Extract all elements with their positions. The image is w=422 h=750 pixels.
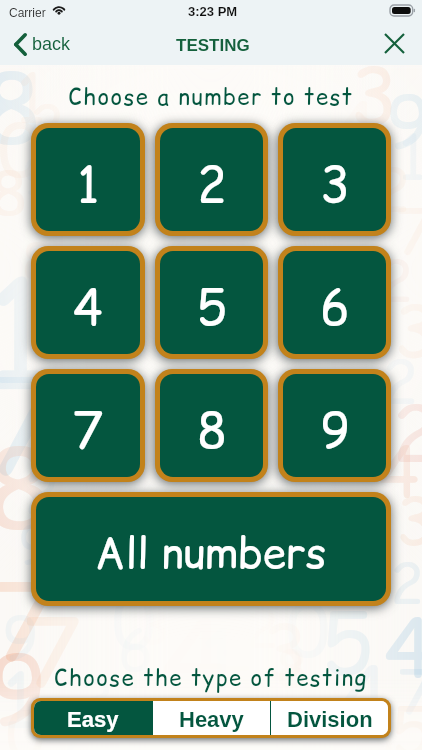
staticText: 0 <box>112 572 156 672</box>
button[interactable]: 8 <box>160 374 263 477</box>
staticText: 2 <box>390 544 422 622</box>
staticText: 8 <box>0 412 54 565</box>
staticText: Heavy <box>179 707 244 732</box>
staticText: Division <box>287 707 373 732</box>
staticText: 7 <box>398 650 422 734</box>
button[interactable]: 5 <box>160 251 263 354</box>
staticText: 9 <box>2 596 39 680</box>
staticText: 8 <box>276 632 308 705</box>
staticText: 7 <box>0 548 56 693</box>
staticText: 1 <box>0 232 50 427</box>
staticText: 9 <box>386 72 422 172</box>
staticText: 7 <box>0 336 61 515</box>
staticText: 8 <box>0 150 28 236</box>
staticText: 3 <box>394 282 422 380</box>
staticText: 2 <box>62 700 95 750</box>
staticText: Easy <box>67 707 119 732</box>
staticText: 5 <box>322 584 374 701</box>
staticText: 2 <box>24 452 60 533</box>
staticText: 7 <box>126 700 161 750</box>
staticText: 1 <box>398 114 422 200</box>
staticText: 7 <box>24 588 81 716</box>
staticText: 2 <box>246 590 279 665</box>
button[interactable]: 3 <box>283 128 386 231</box>
staticText: Carrier <box>9 6 46 19</box>
staticText: 1 <box>16 52 46 144</box>
staticText: 4 <box>378 424 420 519</box>
staticText: Choose the type of testing <box>31 663 391 694</box>
staticText: 3 <box>140 592 170 659</box>
staticText: 4 <box>384 592 422 704</box>
staticText: 5 <box>360 700 395 750</box>
button[interactable]: Division <box>271 701 388 735</box>
staticText: 3 <box>262 600 308 703</box>
button[interactable]: 6 <box>283 251 386 354</box>
staticText: 3 <box>320 150 350 218</box>
staticText: 5 <box>392 686 422 750</box>
button[interactable]: All numbers <box>36 497 386 601</box>
staticText: All numbers <box>95 524 327 583</box>
staticText: 8 <box>0 40 42 177</box>
staticText: 7 <box>396 188 422 274</box>
staticText: 1 <box>2 648 36 750</box>
staticText: 9 <box>0 622 47 750</box>
staticText: 2 <box>30 86 65 164</box>
staticText: 1 <box>218 580 250 678</box>
staticText: TESTING <box>176 36 250 55</box>
staticText: 5 <box>197 273 227 341</box>
staticText: 2 <box>197 150 227 218</box>
staticText: 0 <box>246 66 281 144</box>
staticText: 1 <box>77 150 100 218</box>
staticText: 1 <box>144 58 172 142</box>
staticText: 6 <box>188 62 224 143</box>
button[interactable]: 1 <box>36 128 140 231</box>
staticText: 4 <box>162 584 226 729</box>
staticText: 3 <box>78 660 115 744</box>
staticText: 1 <box>198 598 242 732</box>
button[interactable]: 7 <box>36 374 140 477</box>
staticText: 8 <box>197 396 227 464</box>
staticText: 9 <box>18 506 51 581</box>
staticText: 9 <box>22 142 52 209</box>
staticText: 9 <box>320 396 350 464</box>
button[interactable]: Heavy <box>153 701 270 735</box>
staticText: 7 <box>198 648 229 718</box>
staticText: 6 <box>118 610 154 691</box>
button[interactable]: back <box>8 29 77 60</box>
staticText: 5 <box>222 650 253 720</box>
staticText: 3 <box>350 42 398 151</box>
staticText: 2 <box>374 148 411 232</box>
staticText: 0 <box>0 100 42 200</box>
staticText: 4 <box>340 640 389 750</box>
staticText: 2 <box>382 340 419 424</box>
staticText: 7 <box>73 396 103 464</box>
staticText: 2 <box>392 380 422 486</box>
staticText: 0 <box>286 580 330 680</box>
button[interactable]: 9 <box>283 374 386 477</box>
button[interactable]: Easy <box>34 701 152 735</box>
staticText: 0 <box>6 690 46 750</box>
staticText: 4 <box>336 80 377 172</box>
staticText: 4 <box>73 273 103 341</box>
staticText: back <box>32 34 71 54</box>
button[interactable]: 2 <box>160 128 263 231</box>
staticText: 3 <box>396 476 422 565</box>
staticText: 3:23 PM <box>188 4 238 19</box>
staticText: Choose a number to test <box>31 82 391 113</box>
button[interactable]: 4 <box>36 251 140 354</box>
staticText: 2 <box>378 240 414 321</box>
staticText: 8 <box>22 226 53 296</box>
staticText: 6 <box>320 273 350 341</box>
button[interactable]: Close <box>376 25 412 61</box>
